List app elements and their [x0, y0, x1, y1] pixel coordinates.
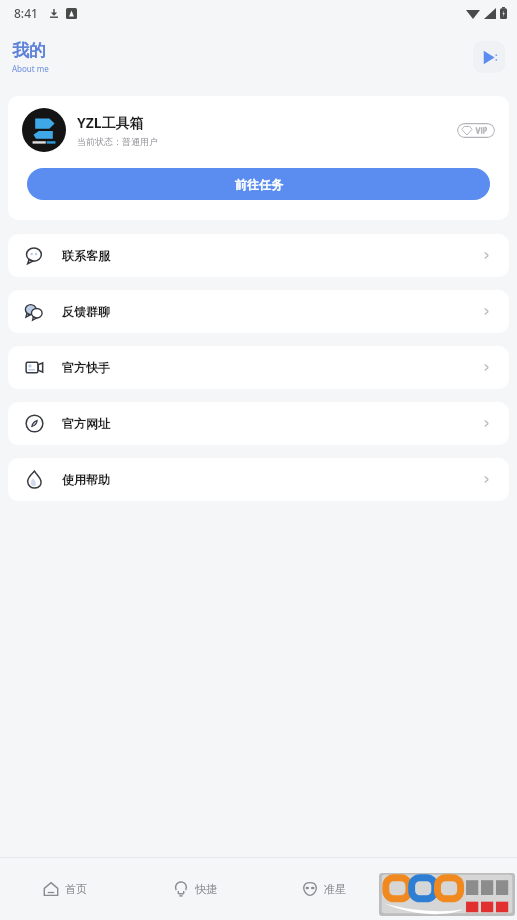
staticText: YZL工具箱 [77, 113, 144, 132]
staticText: 反馈群聊 [62, 304, 110, 319]
button[interactable]: 前往任务 [27, 168, 490, 200]
staticText: 官方快手 [62, 360, 110, 375]
button[interactable]: 使用帮助 [8, 458, 509, 501]
staticText: 我的 [12, 40, 46, 61]
button[interactable]: 联系客服 [8, 234, 509, 277]
staticText: 前往任务 [235, 177, 283, 192]
staticText: 8:41 [14, 5, 38, 21]
button[interactable]: 快捷 [130, 858, 259, 920]
staticText: 准星 [324, 882, 346, 896]
button[interactable]: 官方快手 [8, 346, 509, 389]
button[interactable]: 准星 [259, 858, 388, 920]
staticText: 首页 [65, 882, 87, 896]
button[interactable]: 官方网址 [8, 402, 509, 445]
button[interactable]: VIP [457, 123, 495, 138]
staticText: 官方网址 [62, 416, 110, 431]
staticText: About me [12, 63, 49, 74]
button[interactable]: 首页 [0, 858, 130, 920]
staticText: 联系客服 [62, 248, 110, 263]
staticText: 使用帮助 [62, 472, 110, 487]
button[interactable]: Send [473, 41, 505, 73]
staticText: 当前状态：普通用户 [77, 136, 158, 147]
staticText: 快捷 [195, 882, 217, 896]
button[interactable]: 反馈群聊 [8, 290, 509, 333]
